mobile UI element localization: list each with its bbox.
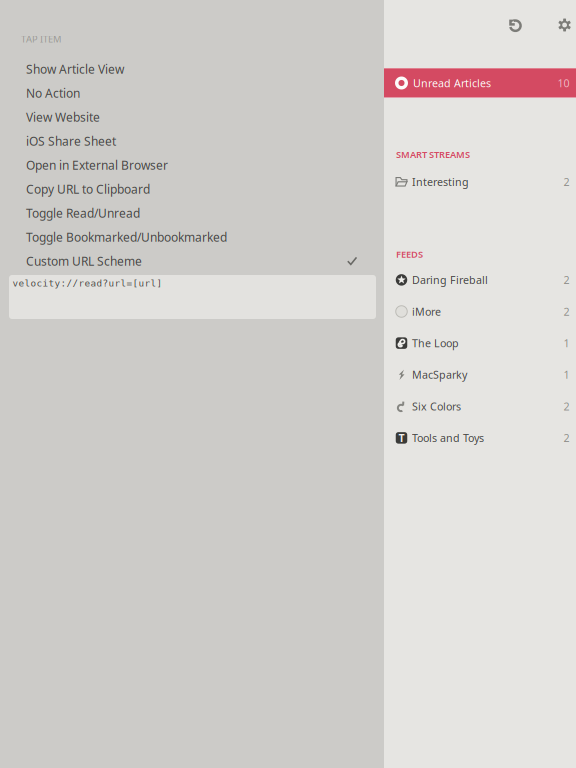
button[interactable]: Daring Fireball — [384, 264, 576, 296]
button[interactable]: Interesting — [384, 166, 576, 198]
staticText: Open in External Browser — [26, 157, 168, 173]
staticText: Toggle Read/Unread — [26, 205, 140, 221]
button[interactable]: Settings — [553, 12, 576, 38]
staticText: 2 — [563, 399, 569, 413]
staticText: iOS Share Sheet — [26, 133, 116, 149]
staticText: Toggle Bookmarked/Unbookmarked — [26, 229, 227, 245]
staticText: Six Colors — [412, 399, 461, 413]
staticText: 2 — [563, 431, 569, 445]
staticText: TAP ITEM — [21, 33, 61, 45]
button[interactable]: Unread Articles — [384, 68, 576, 98]
button[interactable]: Custom URL Scheme — [0, 249, 384, 273]
button[interactable]: Show Article View — [0, 57, 384, 81]
staticText: View Website — [26, 109, 100, 125]
staticText: 2 — [563, 175, 569, 189]
button[interactable]: View Website — [0, 105, 384, 129]
staticText: 2 — [563, 273, 569, 287]
button[interactable]: T — [384, 422, 576, 454]
staticText: SMART STREAMS — [396, 148, 470, 161]
button[interactable]: Toggle Bookmarked/Unbookmarked — [0, 225, 384, 249]
staticText: No Action — [26, 85, 80, 101]
button[interactable]: iMore — [384, 296, 576, 327]
staticText: 10 — [557, 76, 569, 90]
staticText: Interesting — [412, 175, 469, 189]
button[interactable]: Six Colors — [384, 390, 576, 422]
staticText: Custom URL Scheme — [26, 253, 142, 269]
staticText: iMore — [412, 304, 441, 319]
staticText: 1 — [563, 336, 569, 350]
button[interactable]: The Loop — [384, 327, 576, 359]
button[interactable]: Refresh — [501, 12, 529, 38]
staticText: T — [398, 431, 404, 445]
staticText: Copy URL to Clipboard — [26, 181, 150, 197]
staticText: Tools and Toys — [412, 431, 484, 445]
button[interactable]: No Action — [0, 81, 384, 105]
button[interactable]: MacSparky — [384, 359, 576, 390]
button[interactable]: iOS Share Sheet — [0, 129, 384, 153]
staticText: FEEDS — [396, 248, 423, 260]
staticText: 2 — [563, 304, 569, 319]
staticText: MacSparky — [412, 368, 467, 382]
staticText: 1 — [563, 368, 569, 382]
button[interactable]: Open in External Browser — [0, 153, 384, 177]
button[interactable]: Toggle Read/Unread — [0, 201, 384, 225]
staticText: Daring Fireball — [412, 273, 488, 287]
button[interactable]: Copy URL to Clipboard — [0, 177, 384, 201]
staticText: Unread Articles — [413, 76, 491, 90]
staticText: The Loop — [412, 336, 459, 350]
staticText: Show Article View — [26, 61, 124, 77]
staticText: velocity://read?url=[url] — [12, 278, 162, 289]
